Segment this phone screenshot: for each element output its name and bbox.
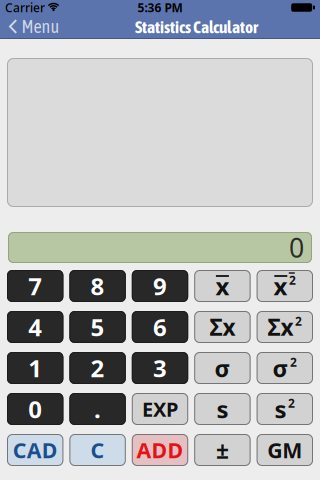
button[interactable]: Mean bbox=[194, 270, 251, 302]
staticText: ADD bbox=[136, 436, 183, 464]
staticText: 2 bbox=[91, 352, 105, 384]
button[interactable]: 3 bbox=[132, 352, 188, 384]
button[interactable]: σ bbox=[257, 352, 313, 384]
staticText: s bbox=[216, 393, 228, 425]
button[interactable]: ADD bbox=[132, 434, 188, 466]
staticText: 5 bbox=[91, 311, 105, 343]
button[interactable]: 8 bbox=[69, 270, 126, 302]
staticText: s bbox=[275, 393, 287, 425]
staticText: 6 bbox=[153, 311, 167, 343]
button[interactable]: . bbox=[69, 393, 126, 425]
staticText: EXP bbox=[142, 396, 178, 422]
staticText: Menu bbox=[21, 16, 59, 37]
staticText: 2 bbox=[290, 354, 297, 370]
button[interactable]: 4 bbox=[7, 311, 63, 343]
button[interactable]: GM bbox=[257, 434, 313, 466]
button[interactable]: 5 bbox=[69, 311, 126, 343]
button[interactable]: 1 bbox=[7, 352, 63, 384]
button[interactable]: Σx bbox=[194, 311, 251, 343]
staticText: 7 bbox=[28, 270, 42, 302]
staticText: Σx bbox=[209, 312, 235, 342]
staticText: x bbox=[215, 270, 229, 302]
staticText: Carrier bbox=[5, 0, 45, 15]
button[interactable]: ± bbox=[194, 434, 251, 466]
staticText: Statistics Calculator bbox=[135, 17, 258, 37]
staticText: σ bbox=[273, 352, 289, 384]
staticText: . bbox=[94, 393, 101, 425]
button[interactable]: EXP bbox=[132, 393, 188, 425]
staticText: CAD bbox=[13, 436, 58, 464]
staticText: 9 bbox=[153, 270, 167, 302]
staticText: 1 bbox=[28, 352, 42, 384]
staticText: 2 bbox=[288, 395, 295, 411]
staticText: 5:36 PM bbox=[137, 0, 182, 15]
staticText: 3 bbox=[153, 352, 167, 384]
staticText: 2 bbox=[289, 272, 296, 288]
staticText: GM bbox=[267, 436, 302, 464]
staticText: 8 bbox=[91, 270, 105, 302]
button[interactable]: s bbox=[194, 393, 251, 425]
staticText: 4 bbox=[28, 311, 42, 343]
button[interactable]: CAD bbox=[7, 434, 63, 466]
button[interactable]: 2 bbox=[69, 352, 126, 384]
staticText: 0 bbox=[28, 393, 42, 425]
button[interactable]: 9 bbox=[132, 270, 188, 302]
staticText: 0 bbox=[289, 230, 304, 265]
staticText: 2 bbox=[295, 313, 302, 329]
staticText: Σx bbox=[268, 312, 294, 342]
button[interactable]: 0 bbox=[7, 393, 63, 425]
staticText: C bbox=[91, 436, 105, 464]
staticText: x bbox=[274, 270, 288, 302]
button[interactable]: Menu bbox=[0, 16, 59, 37]
button[interactable]: s bbox=[257, 393, 313, 425]
button[interactable]: C bbox=[69, 434, 126, 466]
button[interactable]: Σx bbox=[257, 311, 313, 343]
button[interactable]: 6 bbox=[132, 311, 188, 343]
button[interactable]: 7 bbox=[7, 270, 63, 302]
staticText: ± bbox=[216, 435, 229, 465]
button[interactable]: Mean of squares bbox=[257, 270, 313, 302]
staticText: σ bbox=[214, 352, 230, 384]
button[interactable]: σ bbox=[194, 352, 251, 384]
